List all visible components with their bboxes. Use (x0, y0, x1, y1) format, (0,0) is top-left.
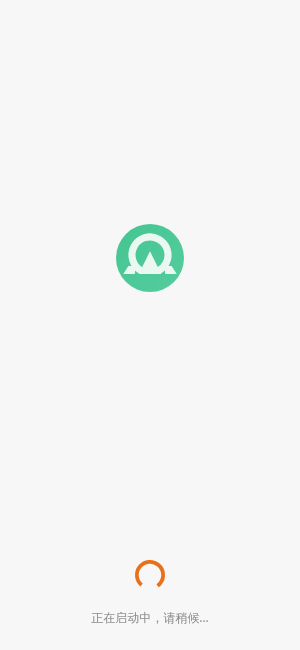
staticText: 正在启动中，请稍候... (0, 609, 300, 625)
